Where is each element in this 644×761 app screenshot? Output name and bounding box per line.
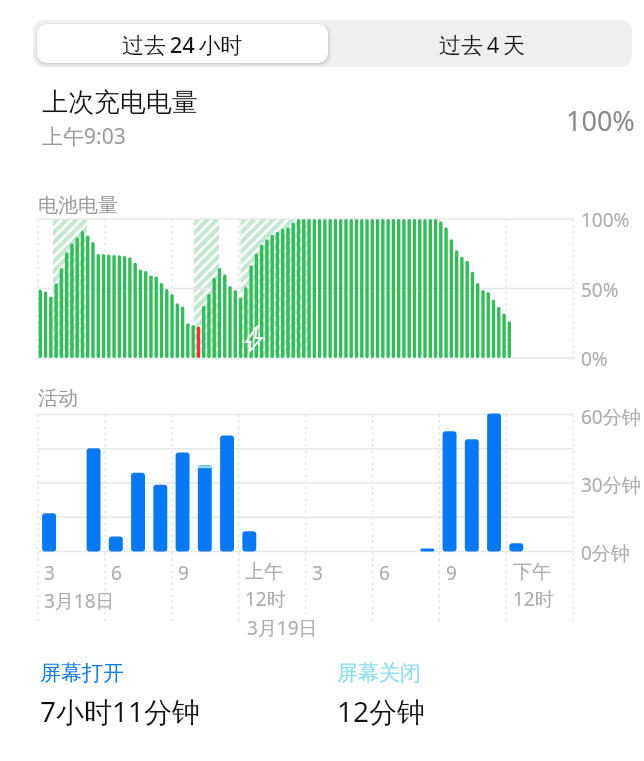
staticText: 0%: [581, 346, 608, 372]
staticText: 50%: [581, 277, 619, 303]
staticText: 0分钟: [581, 540, 630, 566]
staticText: 3月18日: [44, 588, 115, 614]
staticText: 7小时11分钟: [40, 692, 201, 730]
staticText: 6: [111, 560, 122, 586]
staticText: 30分钟: [581, 472, 641, 498]
staticText: 6: [379, 560, 390, 586]
staticText: 屏幕打开: [40, 660, 124, 686]
staticText: 3月19日: [247, 615, 318, 641]
staticText: 12分钟: [337, 692, 426, 730]
button[interactable]: 屏幕打开: [40, 660, 201, 730]
staticText: 屏幕关闭: [337, 660, 421, 686]
staticText: 下午 12时: [513, 560, 554, 612]
staticText: 过去 4 天: [439, 29, 525, 59]
staticText: 过去 24 小时: [122, 29, 243, 59]
staticText: 3: [312, 560, 323, 586]
staticText: 上午 12时: [245, 560, 286, 612]
button[interactable]: 过去 4 天: [332, 20, 632, 67]
staticText: 电池电量: [38, 193, 118, 218]
staticText: 100%: [566, 102, 635, 139]
button[interactable]: 过去 24 小时: [37, 24, 328, 63]
staticText: 上次充电电量: [42, 86, 198, 119]
staticText: 60分钟: [581, 404, 641, 430]
staticText: 活动: [38, 386, 78, 411]
staticText: 3: [44, 560, 55, 586]
staticText: 100%: [581, 207, 630, 233]
staticText: 9: [446, 560, 457, 586]
staticText: 9: [178, 560, 189, 586]
button[interactable]: 屏幕关闭: [337, 660, 426, 730]
staticText: 上午9:03: [42, 122, 126, 151]
